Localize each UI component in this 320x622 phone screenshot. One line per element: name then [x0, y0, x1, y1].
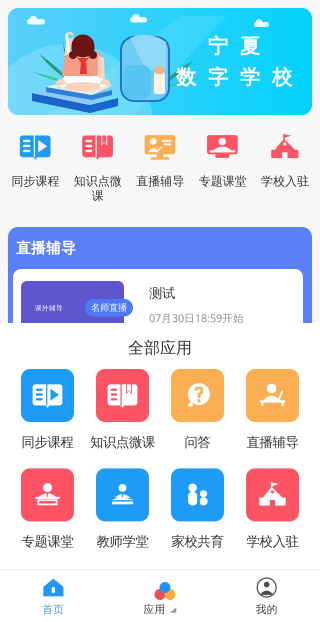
- staticText: 直播辅导: [136, 174, 184, 189]
- staticText: 宁夏: [208, 34, 260, 59]
- button[interactable]: 知识点微课: [85, 369, 160, 450]
- staticText: 测试: [149, 285, 175, 301]
- staticText: 教师学堂: [96, 533, 148, 550]
- button[interactable]: 专题课堂: [10, 468, 85, 550]
- staticText: 学校入驻: [261, 174, 309, 189]
- staticText: 数字学校: [176, 65, 292, 90]
- button[interactable]: 应用: [107, 577, 213, 616]
- button[interactable]: 课外辅导: [13, 269, 303, 353]
- button[interactable]: 学校入驻: [254, 131, 316, 189]
- button[interactable]: 我的: [213, 577, 320, 616]
- button[interactable]: 家校共育: [160, 468, 235, 550]
- staticText: 知识点微课: [90, 434, 155, 450]
- staticText: 07月30日18:59开始: [149, 311, 244, 325]
- staticText: 同步课程: [21, 434, 73, 450]
- staticText: 专题课堂: [21, 533, 73, 550]
- staticText: 我的: [256, 603, 278, 616]
- staticText: 名师直播: [91, 302, 127, 313]
- staticText: 家校共育: [171, 533, 223, 550]
- staticText: 问答: [184, 434, 210, 450]
- staticText: 同步课程: [11, 174, 59, 189]
- button[interactable]: 直播辅导: [129, 131, 191, 189]
- button[interactable]: 问答: [160, 369, 235, 450]
- button[interactable]: 知识点微课: [66, 131, 129, 203]
- staticText: 全部应用: [128, 338, 192, 358]
- button[interactable]: 直播辅导: [235, 369, 310, 450]
- staticText: 直播辅导: [16, 239, 76, 257]
- staticText: 学校入驻: [246, 533, 298, 550]
- button[interactable]: 首页: [0, 577, 107, 616]
- button[interactable]: 同步课程: [10, 369, 85, 450]
- staticText: 课外辅导: [35, 304, 63, 312]
- staticText: 直播辅导: [246, 434, 298, 450]
- staticText: 首页: [42, 603, 64, 616]
- staticText: 专题课堂: [198, 174, 246, 189]
- button[interactable]: 教师学堂: [85, 468, 160, 550]
- staticText: 应用: [143, 603, 165, 616]
- staticText: 知识点微课: [74, 174, 122, 203]
- button[interactable]: 专题课堂: [191, 131, 254, 189]
- button[interactable]: 学校入驻: [235, 468, 310, 550]
- button[interactable]: 同步课程: [4, 131, 66, 189]
